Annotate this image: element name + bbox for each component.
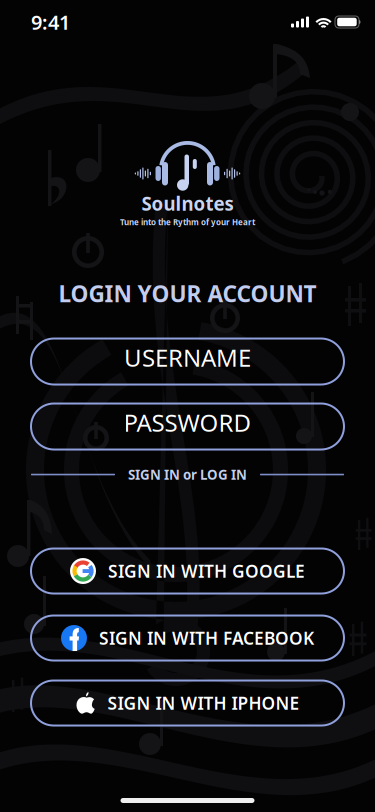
- staticText: 9:41: [31, 9, 70, 35]
- staticText: Soulnotes: [141, 191, 233, 216]
- staticText: Tune into the Rythm of your Heart: [120, 217, 255, 227]
- staticText: LOGIN YOUR ACCOUNT: [58, 278, 316, 308]
- staticText: USERNAME: [124, 342, 251, 373]
- staticText: SIGN IN WITH IPHONE: [107, 691, 299, 714]
- button[interactable]: PASSWORD: [31, 403, 344, 449]
- staticText: PASSWORD: [123, 407, 251, 438]
- button[interactable]: SIGN IN WITH GOOGLE: [31, 548, 344, 593]
- staticText: SIGN IN WITH GOOGLE: [108, 559, 305, 582]
- staticText: SIGN IN or LOG IN: [128, 466, 247, 483]
- button[interactable]: USERNAME: [31, 338, 344, 384]
- staticText: SIGN IN WITH FACEBOOK: [99, 626, 314, 649]
- button[interactable]: SIGN IN WITH FACEBOOK: [31, 615, 344, 660]
- button[interactable]: SIGN IN WITH IPHONE: [31, 680, 344, 725]
